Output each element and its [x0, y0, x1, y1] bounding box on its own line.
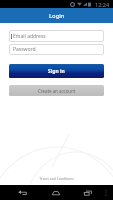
- button[interactable]: More options: [98, 185, 113, 200]
- button[interactable]: Sign in: [9, 64, 104, 78]
- staticText: Password: [13, 46, 36, 53]
- button[interactable]: Login: [0, 8, 113, 23]
- staticText: Create an account: [38, 88, 76, 94]
- staticText: Email address: [13, 33, 46, 40]
- staticText: 12:24: [95, 1, 110, 8]
- button[interactable]: Home: [44, 185, 68, 200]
- staticText: Login: [49, 12, 65, 20]
- button[interactable]: Terms and Conditions: [0, 176, 113, 181]
- button[interactable]: Create an account: [9, 85, 104, 96]
- button[interactable]: Password: [9, 44, 104, 55]
- button[interactable]: Email address: [9, 30, 104, 42]
- button[interactable]: Back: [11, 185, 35, 200]
- staticText: Sign in: [48, 68, 65, 75]
- button[interactable]: Recent apps: [76, 185, 100, 200]
